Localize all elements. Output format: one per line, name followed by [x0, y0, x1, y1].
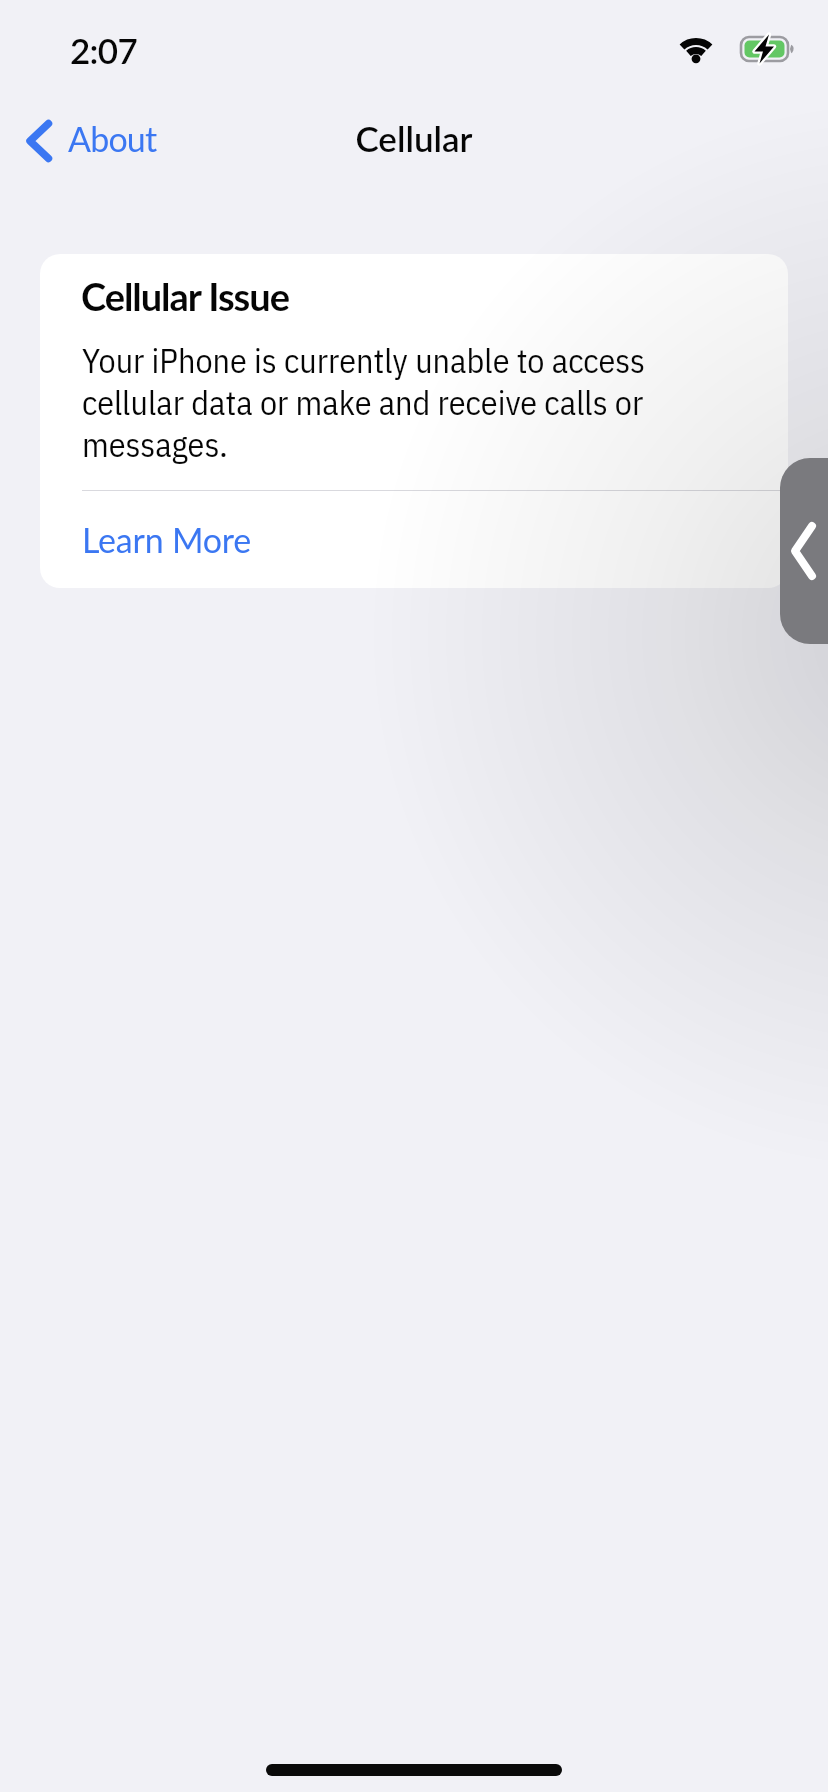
staticText: About	[68, 118, 157, 159]
button[interactable]	[780, 458, 828, 644]
button[interactable]: About	[20, 108, 170, 170]
staticText: Learn More	[82, 519, 252, 560]
button[interactable]: Learn More	[82, 504, 293, 564]
staticText: Your iPhone is currently unable to acces…	[82, 338, 645, 466]
staticText: Cellular	[0, 117, 828, 159]
staticText: Cellular Issue	[81, 273, 289, 319]
staticText: 2:07	[70, 29, 137, 71]
